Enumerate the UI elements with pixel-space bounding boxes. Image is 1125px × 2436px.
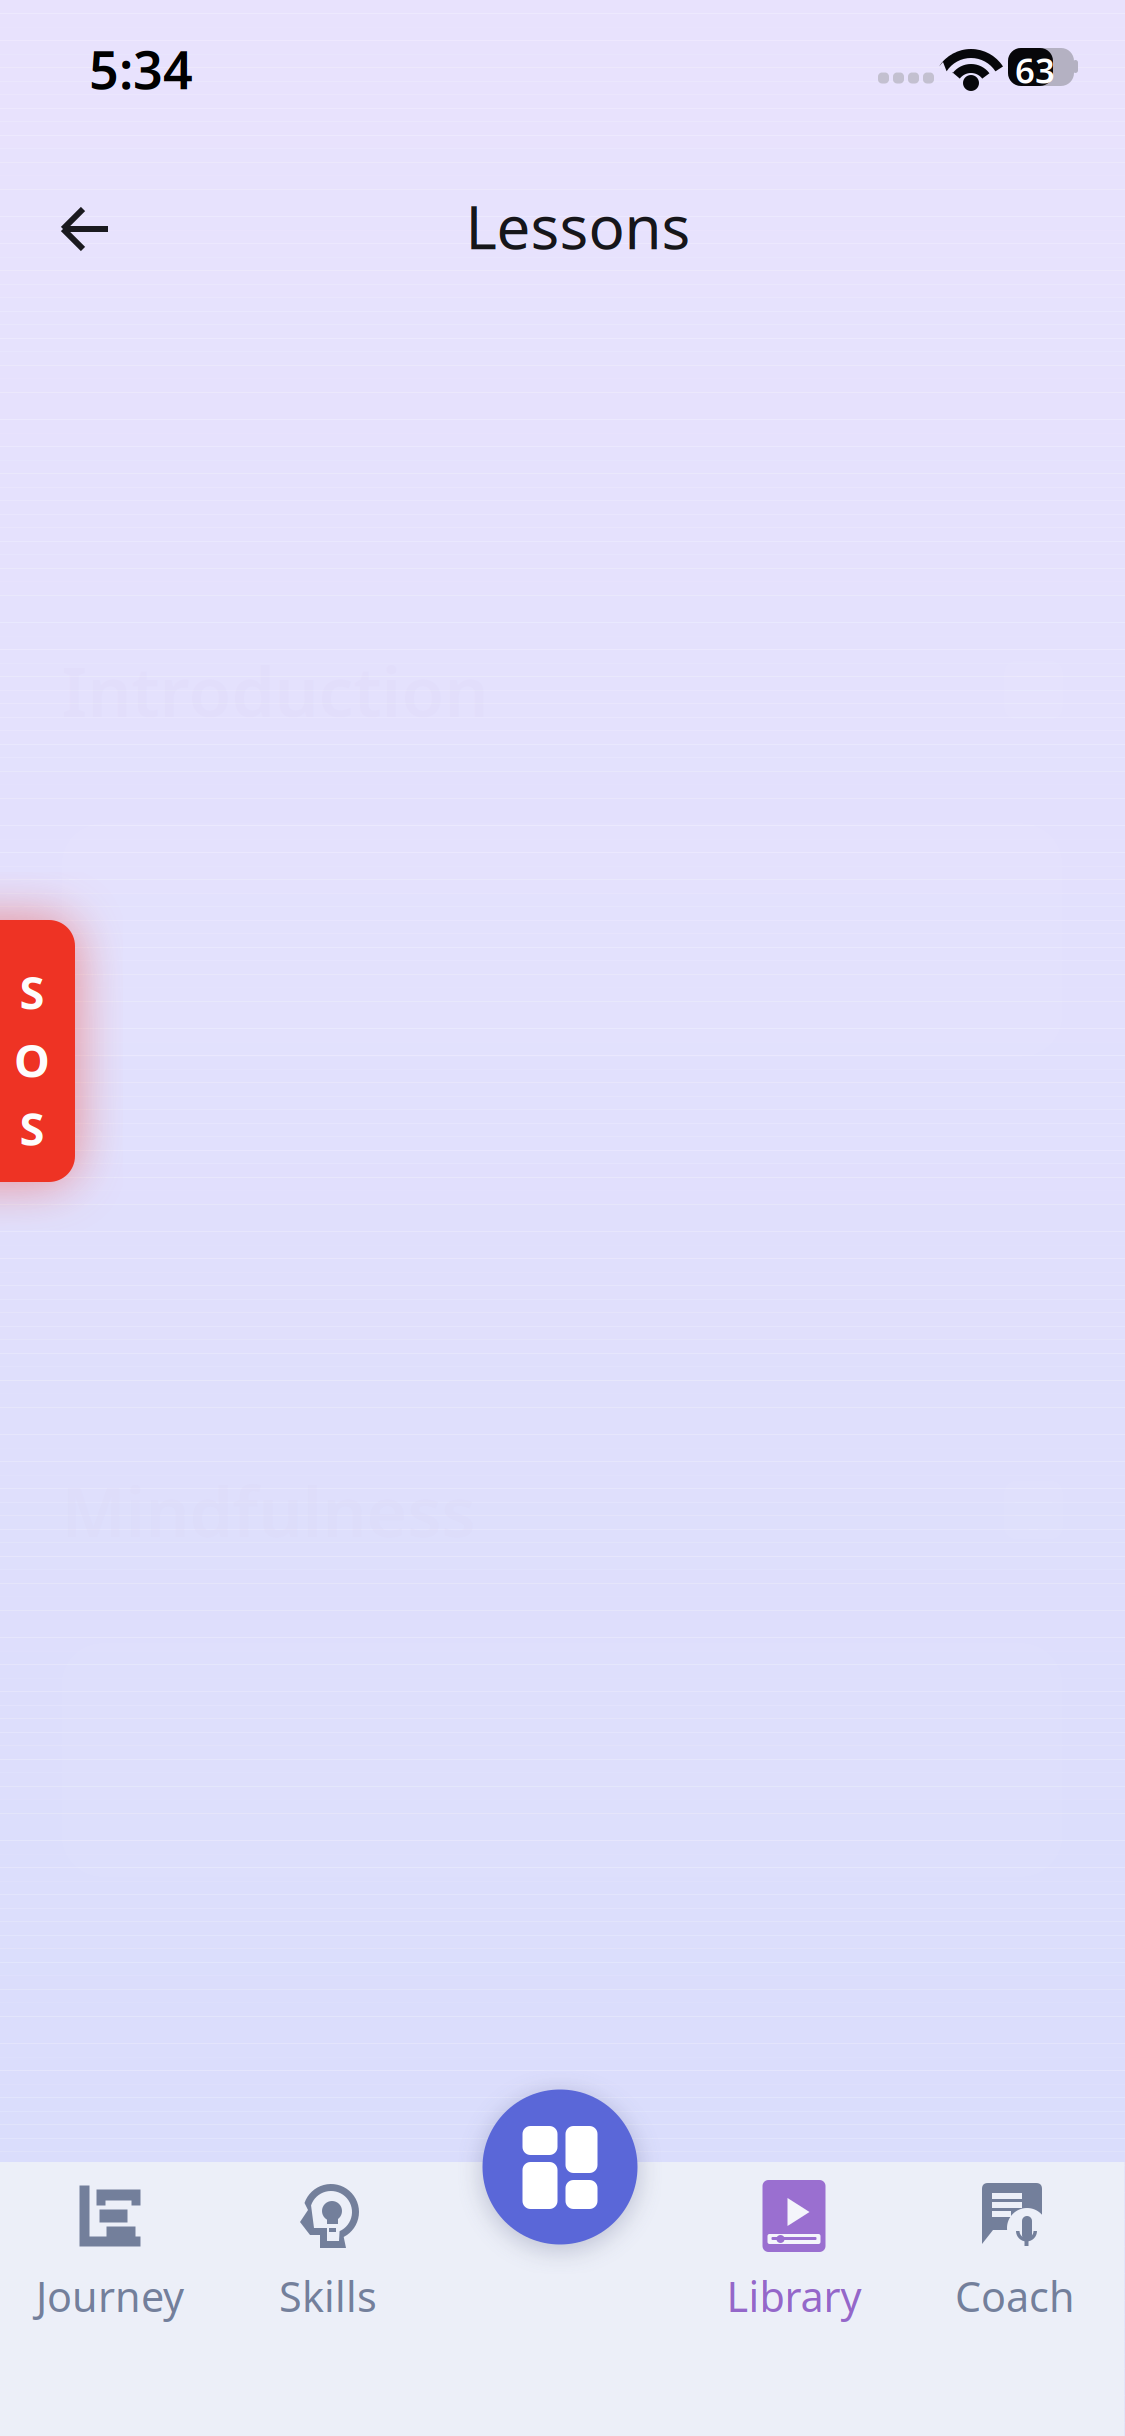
button[interactable]: Back <box>26 174 146 284</box>
staticText: Library <box>726 2269 861 2323</box>
button[interactable]: Coach <box>890 2168 1125 2368</box>
button[interactable]: Library <box>669 2168 919 2368</box>
staticText: Coach <box>955 2269 1075 2323</box>
staticText: O <box>14 1030 50 1090</box>
staticText: S <box>19 1098 44 1158</box>
button[interactable]: Skills <box>203 2168 453 2368</box>
staticText: Skills <box>279 2269 377 2323</box>
staticText: 63 <box>1015 47 1055 93</box>
staticText: Journey <box>36 2269 184 2323</box>
staticText: S <box>19 962 44 1022</box>
button[interactable]: SOS emergency help <box>9 882 189 1242</box>
staticText: Lessons <box>465 186 690 266</box>
staticText: 5:34 <box>89 34 193 104</box>
button[interactable]: Dashboard <box>472 2079 647 2254</box>
button[interactable]: Journey <box>0 2168 235 2368</box>
